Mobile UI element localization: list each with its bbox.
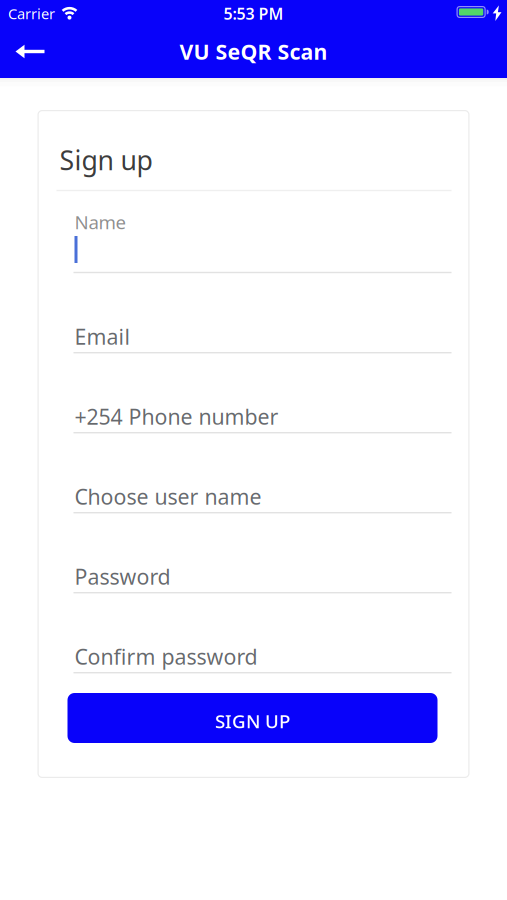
button[interactable]: SIGN UP — [67, 693, 437, 743]
staticText: Password — [74, 562, 170, 591]
staticText: +254 Phone number — [74, 402, 278, 431]
staticText: SIGN UP — [215, 709, 290, 733]
staticText: Choose user name — [74, 482, 261, 511]
staticText: Name — [74, 210, 126, 234]
button[interactable]: Password — [73, 562, 451, 596]
button[interactable]: Confirm password — [73, 642, 451, 676]
button[interactable]: Email — [73, 322, 451, 356]
staticText: Confirm password — [74, 642, 257, 671]
staticText: VU SeQR Scan — [179, 37, 327, 66]
staticText: Email — [74, 322, 130, 351]
button[interactable]: Choose user name — [73, 482, 451, 516]
staticText: Sign up — [59, 142, 152, 178]
staticText: 5:53 PM — [223, 3, 283, 24]
staticText: Carrier — [8, 4, 55, 23]
button[interactable]: Name — [73, 208, 451, 275]
button[interactable]: Back — [2, 26, 58, 76]
button[interactable]: +254 Phone number — [73, 402, 451, 436]
